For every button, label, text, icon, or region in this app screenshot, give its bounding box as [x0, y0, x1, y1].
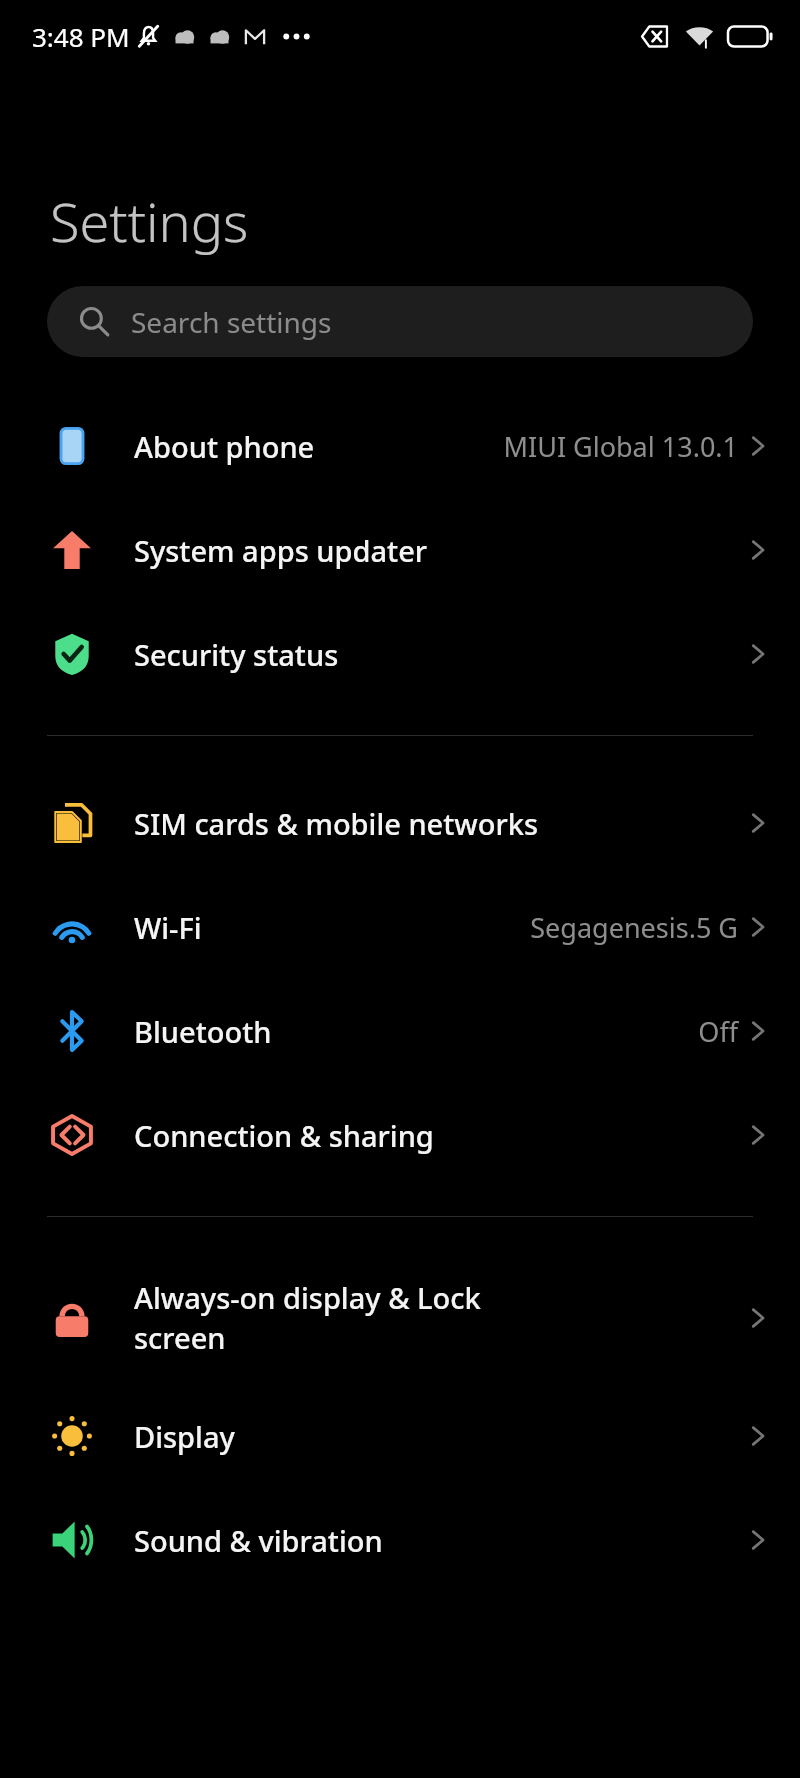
- staticText: Settings: [50, 184, 249, 258]
- staticText: System apps updater: [134, 531, 428, 570]
- staticText: MIUI Global 13.0.1: [503, 428, 738, 465]
- staticText: Sound & vibration: [134, 1521, 383, 1560]
- button[interactable]: Search settings: [47, 286, 753, 357]
- button[interactable]: SIM cards and mobile networks: [0, 771, 800, 875]
- staticText: Connection & sharing: [134, 1116, 434, 1155]
- button[interactable]: Security status: [0, 602, 800, 706]
- staticText: Wi-Fi: [134, 908, 202, 947]
- staticText: SIM cards & mobile networks: [134, 804, 539, 843]
- staticText: Security status: [134, 635, 339, 674]
- staticText: Off: [698, 1013, 738, 1050]
- button[interactable]: Always-on display and Lock screen: [0, 1252, 800, 1384]
- staticText: 3:48 PM: [32, 19, 130, 54]
- staticText: Always-on display & Lock screen: [134, 1278, 481, 1358]
- staticText: About phone: [134, 427, 315, 466]
- button[interactable]: Display: [0, 1384, 800, 1488]
- staticText: Bluetooth: [134, 1012, 272, 1051]
- staticText: Display: [134, 1417, 235, 1456]
- button[interactable]: Wi-Fi: [0, 875, 800, 979]
- button[interactable]: Connection and sharing: [0, 1083, 800, 1187]
- button[interactable]: Bluetooth: [0, 979, 800, 1083]
- button[interactable]: System apps updater: [0, 498, 800, 602]
- staticText: Search settings: [131, 303, 332, 341]
- staticText: Segagenesis.5 G: [530, 909, 738, 946]
- button[interactable]: Sound and vibration: [0, 1488, 800, 1592]
- button[interactable]: About phone: [0, 394, 800, 498]
